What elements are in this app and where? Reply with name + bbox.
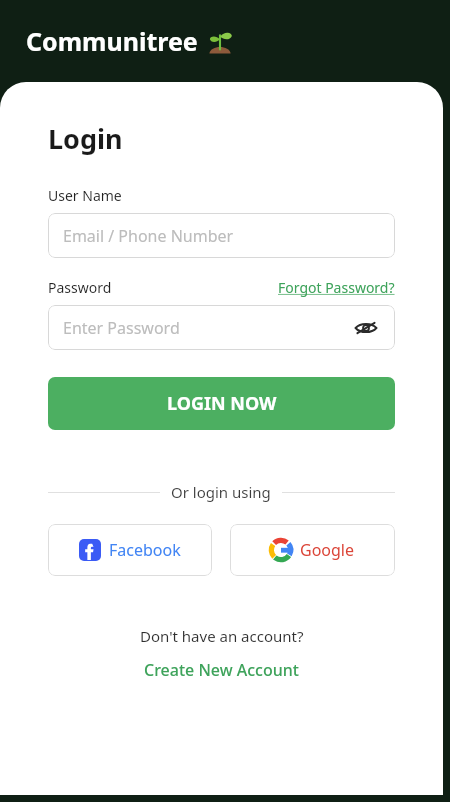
button[interactable]: Show password (352, 314, 380, 342)
staticText: LOGIN NOW (167, 391, 277, 416)
staticText: Password (48, 278, 112, 297)
staticText: Communitree (26, 24, 198, 58)
button[interactable]: Email / Phone Number (48, 213, 395, 258)
button[interactable]: Forgot Password? (278, 278, 395, 297)
staticText: Create New Account (144, 659, 299, 681)
button[interactable]: Create New Account (144, 659, 299, 681)
staticText: Don't have an account? (140, 626, 304, 646)
staticText: Google (300, 539, 355, 561)
staticText: Facebook (109, 539, 181, 561)
staticText: Forgot Password? (278, 278, 395, 297)
staticText: User Name (48, 186, 122, 205)
staticText: Or login using (171, 482, 271, 502)
button[interactable]: Enter Password (48, 305, 395, 350)
staticText: Email / Phone Number (63, 225, 234, 247)
staticText: Enter Password (63, 317, 180, 339)
button[interactable]: Google (230, 524, 395, 576)
button[interactable]: Facebook (48, 524, 212, 576)
staticText: Login (48, 120, 123, 157)
button[interactable]: LOGIN NOW (48, 377, 395, 430)
